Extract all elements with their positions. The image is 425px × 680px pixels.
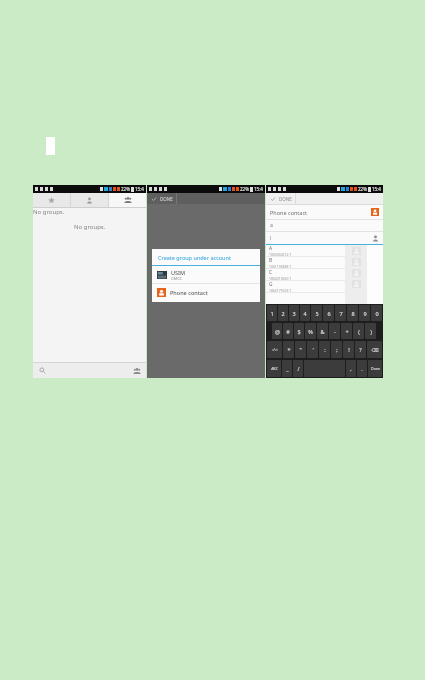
button[interactable]: 0 (371, 305, 382, 321)
button[interactable]: 7 (335, 305, 346, 321)
staticText: 0 (375, 310, 379, 317)
staticText: Create group under account (158, 254, 231, 261)
button[interactable]: Tab (109, 193, 146, 207)
button[interactable]: DONE (147, 193, 265, 204)
button[interactable]: @ (272, 323, 282, 339)
staticText: ⌫ (371, 347, 379, 353)
staticText: ' (312, 346, 314, 353)
button[interactable]: / (293, 360, 303, 377)
button[interactable]: ( (353, 323, 364, 339)
button[interactable]: , (346, 360, 356, 377)
staticText: " (299, 346, 302, 353)
button[interactable]: + (341, 323, 352, 339)
staticText: ABC (271, 366, 278, 371)
staticText: =\< (272, 347, 278, 352)
button[interactable]: : (319, 341, 330, 358)
staticText: % (308, 328, 313, 335)
button[interactable]: C (266, 269, 345, 280)
staticText: 9 (363, 310, 367, 317)
button[interactable]: Tab (71, 193, 108, 207)
staticText: No groups. (33, 208, 65, 216)
button[interactable]: Search (38, 366, 47, 375)
button[interactable]: Tab (33, 193, 70, 207)
staticText: CMCC (171, 276, 183, 281)
button[interactable]: # (283, 323, 293, 339)
staticText: @ (275, 328, 280, 335)
button[interactable]: 9 (359, 305, 370, 321)
staticText: 1063002512 7 (269, 252, 292, 256)
staticText: 1 (270, 310, 274, 317)
button[interactable]: 3 (289, 305, 299, 321)
staticText: C (269, 269, 273, 276)
button[interactable]: & (317, 323, 328, 339)
button[interactable]: ! (343, 341, 354, 358)
staticText: 5 (315, 310, 319, 317)
button[interactable]: . (357, 360, 367, 377)
button[interactable]: Add group (132, 366, 141, 375)
button[interactable]: " (295, 341, 306, 358)
staticText: . (361, 365, 363, 372)
button[interactable]: B (266, 257, 345, 268)
staticText: Phone contact (170, 289, 208, 296)
button[interactable]: Add member (372, 235, 379, 242)
staticText: - (334, 328, 336, 335)
staticText: 4 (303, 310, 307, 317)
button[interactable]: % (305, 323, 316, 339)
button[interactable]: ; (331, 341, 342, 358)
staticText: $ (297, 328, 301, 335)
staticText: _ (286, 365, 289, 372)
staticText: DONE (279, 196, 292, 202)
button[interactable]: 8 (347, 305, 358, 321)
staticText: G (269, 281, 273, 288)
staticText: 15:4 (254, 186, 263, 192)
button[interactable]: DONE (266, 193, 383, 204)
staticText: 1860216560 7 (269, 276, 292, 280)
staticText: DONE (160, 196, 173, 202)
staticText: 22% (121, 186, 130, 192)
staticText: ? (359, 346, 362, 353)
button[interactable]: A (266, 245, 345, 256)
staticText: ; (336, 346, 338, 353)
staticText: * (287, 346, 291, 353)
button[interactable]: 6 (323, 305, 334, 321)
staticText: 22% (358, 186, 367, 192)
button[interactable]: 5 (311, 305, 322, 321)
button[interactable]: - (329, 323, 340, 339)
staticText: 22% (240, 186, 249, 192)
button[interactable]: Phone contact (152, 284, 260, 300)
staticText: 3 (292, 310, 296, 317)
button[interactable]: 2 (278, 305, 288, 321)
staticText: & (320, 328, 325, 335)
staticText: 8 (351, 310, 355, 317)
button[interactable]: Done (368, 360, 382, 377)
button[interactable]: $ (294, 323, 304, 339)
staticText: : (324, 346, 326, 353)
staticText: No groups. (74, 223, 106, 231)
button[interactable]: * (283, 341, 294, 358)
staticText: ( (358, 328, 360, 335)
button[interactable]: USIM (152, 266, 260, 283)
staticText: 15:4 (372, 186, 381, 192)
button[interactable]: 4 (300, 305, 310, 321)
button[interactable]: ABC (267, 360, 281, 377)
button[interactable]: G (266, 281, 345, 292)
button[interactable]: Account (371, 208, 379, 216)
button[interactable]: 1 (267, 305, 277, 321)
staticText: ! (348, 346, 350, 353)
staticText: ) (370, 328, 372, 335)
staticText: 1862171603 1 (269, 288, 292, 292)
staticText: Done (371, 366, 380, 371)
button[interactable]: =\< (267, 341, 282, 358)
button[interactable]: ? (355, 341, 366, 358)
button[interactable]: _ (282, 360, 292, 377)
button[interactable]: ) (365, 323, 376, 339)
staticText: 2 (281, 310, 285, 317)
staticText: a (270, 222, 273, 229)
staticText: + (345, 328, 349, 335)
staticText: / (297, 365, 300, 372)
button[interactable]: ' (307, 341, 318, 358)
staticText: USIM (171, 269, 186, 276)
staticText: 6 (327, 310, 331, 317)
button[interactable]: ⌫ (367, 341, 382, 358)
